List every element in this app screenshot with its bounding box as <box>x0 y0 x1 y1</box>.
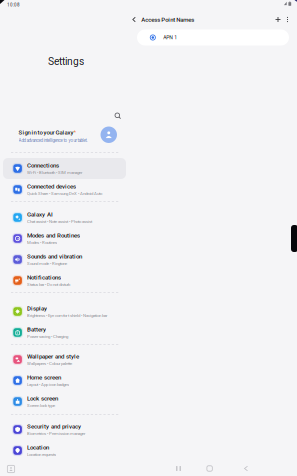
button[interactable]: Back <box>238 462 254 474</box>
staticText: Security and privacy <box>27 423 81 430</box>
button[interactable]: Back <box>130 14 139 25</box>
button[interactable]: Add <box>272 14 283 25</box>
staticText: Connections <box>27 162 59 169</box>
button[interactable]: Recent apps <box>170 462 186 474</box>
button[interactable]: Sign in to your Galaxy <box>18 126 117 143</box>
staticText: 10:08 <box>7 2 20 7</box>
button[interactable]: Connections <box>3 158 126 179</box>
staticText: Sign in to your Galaxy <box>18 129 73 136</box>
staticText: Battery <box>27 326 46 333</box>
staticText: Settings <box>48 55 84 67</box>
staticText: Location requests <box>27 452 56 457</box>
button[interactable]: Sounds and vibration <box>3 249 126 270</box>
staticText: Display <box>27 305 47 312</box>
button[interactable]: Wallpaper and style <box>3 349 126 370</box>
staticText: Galaxy AI <box>27 211 53 218</box>
staticText: Quick Share • Samsung DeX • Android Auto <box>27 191 102 196</box>
button[interactable]: Battery <box>3 322 126 343</box>
staticText: Status bar • Do not disturb <box>27 282 70 287</box>
staticText: Screen lock type <box>27 403 55 408</box>
staticText: Wi-Fi • Bluetooth • SIM manager <box>27 170 82 175</box>
staticText: Connected devices <box>27 183 76 190</box>
staticText: Sound mode • Ringtone <box>27 261 67 266</box>
button[interactable]: Search <box>113 111 123 121</box>
staticText: Brightness • Eye comfort shield • Naviga… <box>27 313 107 318</box>
button[interactable]: More options <box>283 14 292 25</box>
staticText: Chat assist • Note assist • Photo assist <box>27 219 92 224</box>
button[interactable]: Lock screen <box>3 391 126 412</box>
button[interactable]: Connected devices <box>3 179 126 200</box>
staticText: Lock screen <box>27 395 58 402</box>
staticText: Biometrics • Permission manager <box>27 431 85 436</box>
button[interactable]: Display <box>3 301 126 322</box>
staticText: Layout • App icon badges <box>27 382 69 387</box>
button[interactable]: Home <box>202 462 218 474</box>
button[interactable]: Notifications <box>3 270 126 291</box>
button[interactable]: Modes and Routines <box>3 228 126 249</box>
staticText: Location <box>27 444 49 451</box>
button[interactable]: Keyboard <box>5 463 17 475</box>
staticText: * <box>73 129 75 136</box>
staticText: Wallpapers • Colour palette <box>27 361 72 366</box>
button[interactable]: Location <box>3 440 126 461</box>
button[interactable]: Galaxy AI <box>3 207 126 228</box>
staticText: Modes and Routines <box>27 232 80 239</box>
staticText: APN 1 <box>163 34 177 40</box>
staticText: Access Point Names <box>141 16 194 23</box>
button[interactable]: Home screen <box>3 370 126 391</box>
button[interactable]: APN 1 <box>137 29 289 45</box>
staticText: Sounds and vibration <box>27 253 82 260</box>
staticText: Home screen <box>27 374 61 381</box>
staticText: Wallpaper and style <box>27 353 79 360</box>
staticText: Modes • Routines <box>27 240 57 245</box>
staticText: Notifications <box>27 274 61 281</box>
staticText: Power saving • Charging <box>27 334 68 339</box>
button[interactable]: Security and privacy <box>3 419 126 440</box>
staticText: Add advanced intelligence to your tablet… <box>18 138 87 143</box>
